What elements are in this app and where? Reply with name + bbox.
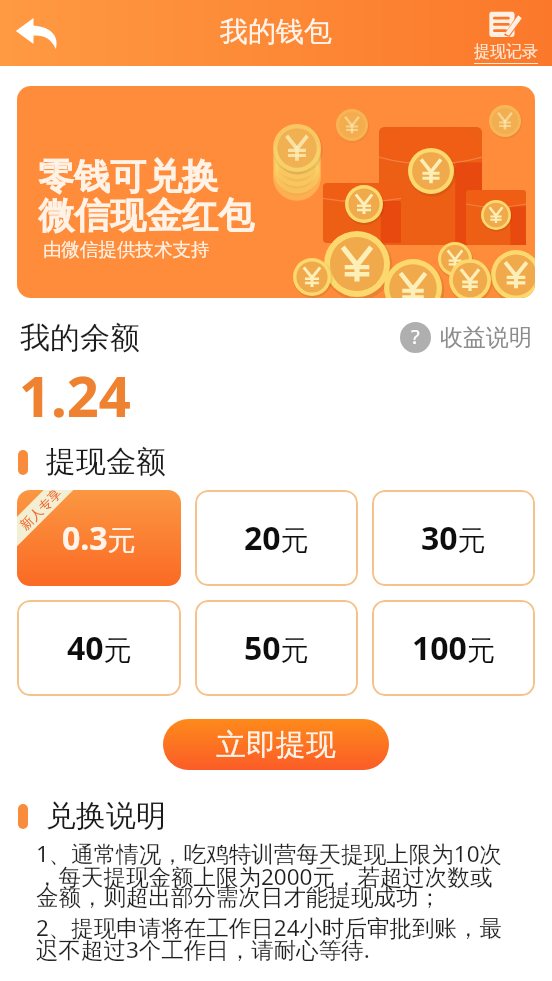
staticText: 提现记录 bbox=[474, 42, 538, 62]
staticText: 我的钱包 bbox=[220, 14, 332, 49]
staticText: 由微信提供技术支持 bbox=[43, 238, 210, 261]
button[interactable]: Back bbox=[6, 0, 68, 66]
button[interactable]: 30元 bbox=[372, 490, 535, 586]
button[interactable]: 100元 bbox=[372, 600, 535, 696]
button[interactable]: 50元 bbox=[195, 600, 358, 696]
staticText: ? bbox=[411, 323, 420, 350]
button[interactable]: 20元 bbox=[195, 490, 358, 586]
staticText: ，每天提现金额上限为2000元，若超过次数或 bbox=[36, 861, 493, 892]
staticText: 微信现金红包 bbox=[38, 193, 254, 238]
button[interactable]: 提现记录 bbox=[467, 0, 545, 66]
staticText: 金额，则超出部分需次日才能提现成功； bbox=[36, 883, 441, 911]
button[interactable]: 40元 bbox=[17, 600, 181, 696]
staticText: 兑换说明 bbox=[46, 797, 166, 835]
button[interactable]: 零钱可兑换 bbox=[17, 86, 535, 298]
staticText: 我的余额 bbox=[20, 319, 140, 357]
staticText: 收益说明 bbox=[440, 323, 532, 352]
staticText: 迟不超过3个工作日，请耐心等待. bbox=[36, 934, 370, 965]
staticText: 20元 bbox=[244, 516, 309, 560]
staticText: 零钱可兑换 bbox=[38, 154, 218, 199]
staticText: 1、通常情况，吃鸡特训营每天提现上限为10次 bbox=[36, 838, 503, 869]
staticText: 立即提现 bbox=[216, 726, 336, 764]
button[interactable]: 0.3元 bbox=[17, 490, 181, 586]
staticText: 30元 bbox=[421, 516, 486, 560]
button[interactable]: 立即提现 bbox=[163, 719, 389, 770]
staticText: 新人专享 bbox=[17, 490, 64, 533]
staticText: 40元 bbox=[67, 626, 132, 670]
staticText: 100元 bbox=[412, 626, 495, 670]
staticText: 0.3元 bbox=[62, 516, 136, 560]
staticText: 1.24 bbox=[19, 357, 131, 433]
staticText: 提现金额 bbox=[46, 443, 166, 481]
staticText: 50元 bbox=[244, 626, 309, 670]
staticText: 2、提现申请将在工作日24小时后审批到账，最 bbox=[36, 912, 503, 943]
button[interactable]: ? bbox=[396, 318, 536, 357]
